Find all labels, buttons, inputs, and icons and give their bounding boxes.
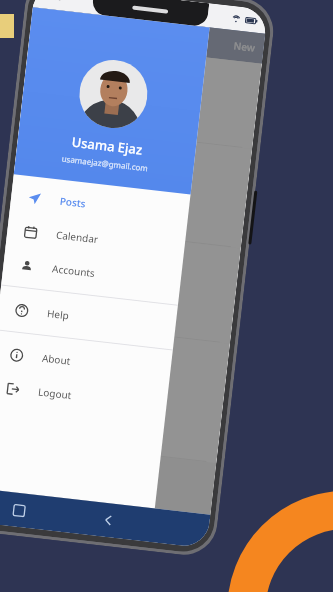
button[interactable]: It is so easy to schedule posts with Soc… xyxy=(8,123,252,248)
staticText: Posts xyxy=(59,194,87,211)
staticText: It has been a great tool for us and we h… xyxy=(23,171,164,197)
staticText: It has been a great tool for us and we h… xyxy=(1,366,142,392)
button[interactable]: Help xyxy=(0,290,177,344)
button[interactable]: Profile photo xyxy=(14,7,210,194)
button[interactable]: Accounts xyxy=(2,246,182,300)
button[interactable]: Profile photo xyxy=(76,56,151,132)
staticText: Accounts xyxy=(51,261,96,280)
button[interactable]: Posts xyxy=(9,178,190,232)
button[interactable]: Calendar xyxy=(5,212,186,266)
staticText: usamaejaz@gmail.com xyxy=(61,153,149,173)
button[interactable]: About xyxy=(0,335,172,389)
button[interactable]: It is so easy to schedule posts with Soc… xyxy=(20,37,262,149)
button[interactable]: It is so easy to schedule posts with Soc… xyxy=(0,317,230,463)
button[interactable]: Logout xyxy=(0,369,168,423)
staticText: It has been a great tool for us and we h… xyxy=(33,86,174,112)
staticText: New xyxy=(233,38,256,55)
button[interactable]: Recents xyxy=(4,496,33,524)
staticText: Logout xyxy=(37,384,73,402)
staticText: It is so easy to schedule posts with Soc… xyxy=(13,258,158,284)
staticText: Calendar xyxy=(55,227,100,246)
staticText: It is so easy to schedule posts with Soc… xyxy=(2,353,147,380)
staticText: 09:00 xyxy=(43,0,62,4)
staticText: About xyxy=(41,351,72,368)
staticText: It is so easy to schedule posts with Soc… xyxy=(34,73,179,99)
staticText: Usama Ejaz xyxy=(71,133,143,159)
staticText: Help xyxy=(46,306,70,322)
staticText: It has been a great tool for us and we h… xyxy=(12,271,153,297)
button[interactable]: Back xyxy=(94,506,123,535)
button[interactable]: It is so easy to schedule posts with Soc… xyxy=(0,222,241,344)
staticText: It is so easy to schedule posts with Soc… xyxy=(24,158,170,185)
